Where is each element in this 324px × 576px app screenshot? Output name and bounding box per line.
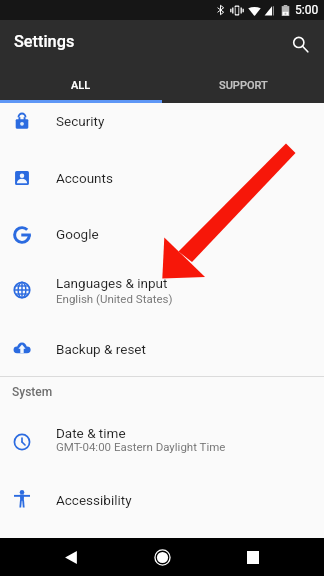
button[interactable] bbox=[0, 207, 324, 263]
button[interactable] bbox=[0, 151, 324, 207]
staticText: 5:00 bbox=[295, 3, 319, 17]
staticText: ALL bbox=[71, 79, 91, 92]
staticText: Date & time bbox=[56, 425, 126, 441]
button[interactable] bbox=[0, 472, 324, 528]
button[interactable] bbox=[0, 263, 324, 320]
button[interactable]: ALL bbox=[0, 68, 162, 103]
staticText: Settings bbox=[14, 32, 75, 51]
staticText: Languages & input bbox=[56, 275, 168, 291]
staticText: Security bbox=[56, 113, 105, 129]
button[interactable]: Recents bbox=[230, 538, 276, 576]
button[interactable]: Home bbox=[139, 538, 185, 576]
staticText: English (United States) bbox=[56, 292, 173, 305]
staticText: Accessibility bbox=[56, 492, 132, 508]
button[interactable] bbox=[0, 103, 324, 151]
staticText: System bbox=[12, 385, 53, 399]
staticText: Accounts bbox=[56, 170, 113, 186]
button[interactable] bbox=[0, 412, 324, 472]
staticText: Google bbox=[56, 226, 99, 242]
staticText: GMT-04:00 Eastern Daylight Time bbox=[56, 440, 226, 453]
button[interactable]: Search bbox=[283, 27, 317, 61]
button[interactable]: SUPPORT bbox=[162, 68, 324, 103]
button[interactable] bbox=[0, 320, 324, 376]
staticText: SUPPORT bbox=[219, 79, 268, 92]
button[interactable]: Back bbox=[48, 538, 94, 576]
staticText: Backup & reset bbox=[56, 341, 146, 357]
